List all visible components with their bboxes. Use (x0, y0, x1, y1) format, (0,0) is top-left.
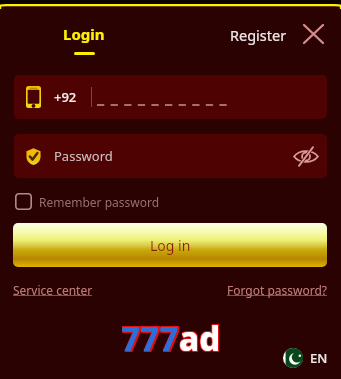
staticText: Log in (150, 236, 191, 255)
staticText: ad (179, 316, 221, 361)
staticText: 777ad (122, 317, 221, 362)
button[interactable]: Show password (289, 139, 323, 173)
staticText: 777ad (121, 317, 220, 362)
staticText: 777ad (123, 315, 222, 360)
button[interactable]: Remember password (15, 192, 160, 211)
staticText: 777ad (121, 315, 220, 360)
button[interactable]: Log in (13, 223, 327, 267)
staticText: Password (54, 147, 113, 165)
staticText: +92 (54, 88, 77, 106)
button[interactable]: +92 (14, 75, 327, 119)
staticText: 777ad (122, 315, 221, 360)
button[interactable]: Forgot password? (227, 282, 328, 298)
staticText: Remember password (39, 194, 160, 210)
staticText: 777ad (123, 316, 222, 361)
staticText: 777ad (123, 317, 222, 362)
staticText: EN (310, 349, 328, 367)
staticText: Login (63, 24, 105, 44)
button[interactable]: Close (300, 21, 326, 47)
button[interactable]: Register (230, 25, 287, 45)
button[interactable]: EN (283, 348, 328, 368)
button[interactable]: Password (14, 134, 327, 178)
button[interactable]: Service center (13, 282, 93, 298)
button[interactable]: Login (63, 24, 105, 55)
staticText: 777 (121, 316, 179, 361)
staticText: 777ad (121, 316, 220, 361)
